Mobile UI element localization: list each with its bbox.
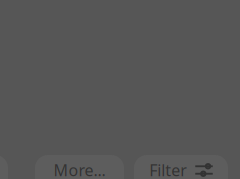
button[interactable]: Filter — [0, 0, 240, 179]
staticText: More... — [53, 159, 105, 179]
staticText: Filter — [149, 159, 187, 179]
button[interactable]: More... — [0, 0, 240, 179]
button[interactable]: Nearby — [0, 0, 240, 179]
